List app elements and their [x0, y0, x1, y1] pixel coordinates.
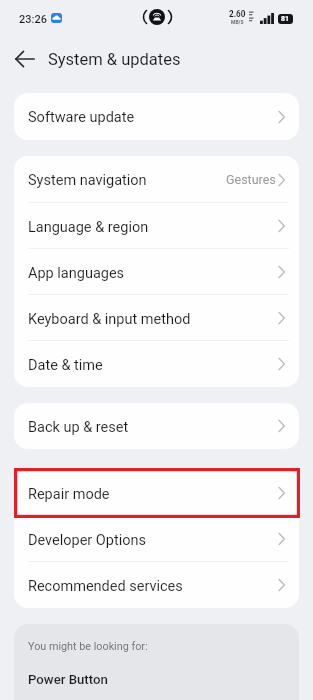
staticText: App languages	[28, 265, 125, 282]
staticText: Gestures	[226, 172, 276, 187]
button[interactable]: Date & time	[14, 341, 299, 387]
staticText: Recommended services	[28, 578, 183, 595]
button[interactable]: System navigation	[14, 156, 299, 203]
staticText: Developer Options	[28, 532, 147, 549]
button[interactable]: Keyboard & input method	[14, 295, 299, 341]
staticText: Power Button	[28, 672, 108, 687]
staticText: 23:26	[19, 13, 47, 26]
button[interactable]: App languages	[14, 249, 299, 295]
staticText: MB/S	[231, 19, 244, 25]
button[interactable]: Recommended services	[14, 562, 299, 608]
staticText: Back up & reset	[28, 419, 129, 436]
button[interactable]: Back up & reset	[14, 403, 299, 449]
staticText: 2.60	[229, 9, 246, 19]
staticText: System & updates	[48, 50, 181, 69]
staticText: Date & time	[28, 357, 103, 374]
staticText: System navigation	[28, 172, 147, 189]
staticText: Repair mode	[28, 486, 110, 503]
staticText: Language & region	[28, 219, 149, 236]
button[interactable]: Repair mode	[14, 470, 299, 516]
staticText: Software update	[28, 109, 135, 126]
button[interactable]: Developer Options	[14, 516, 299, 562]
button[interactable]: Software update	[14, 93, 299, 140]
button[interactable]: Back	[0, 37, 49, 83]
button[interactable]: Language & region	[14, 203, 299, 249]
staticText: 81	[281, 15, 290, 23]
staticText: Keyboard & input method	[28, 311, 191, 328]
staticText: You might be looking for:	[28, 640, 148, 653]
